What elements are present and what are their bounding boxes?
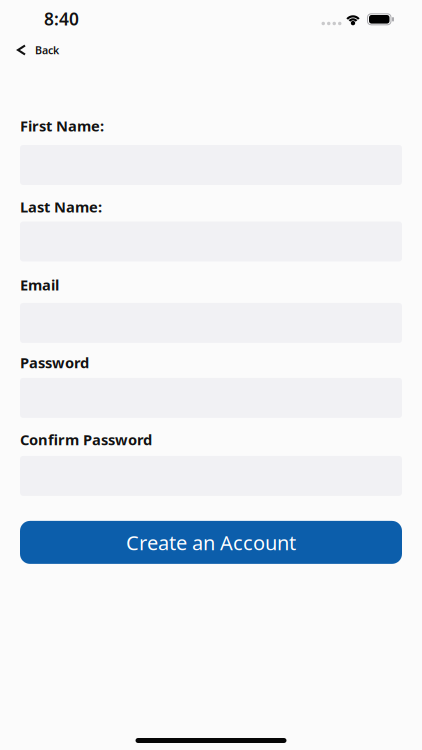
button[interactable]: Back	[0, 43, 59, 57]
staticText: Confirm Password	[20, 430, 152, 449]
staticText: Create an Account	[126, 529, 296, 556]
staticText: Password	[20, 353, 89, 372]
button[interactable]: Create an Account	[20, 521, 402, 564]
staticText: First Name:	[20, 116, 104, 135]
staticText: 8:40	[44, 7, 79, 30]
staticText: Last Name:	[20, 197, 102, 216]
staticText: Back	[35, 43, 59, 57]
staticText: Email	[20, 275, 59, 294]
